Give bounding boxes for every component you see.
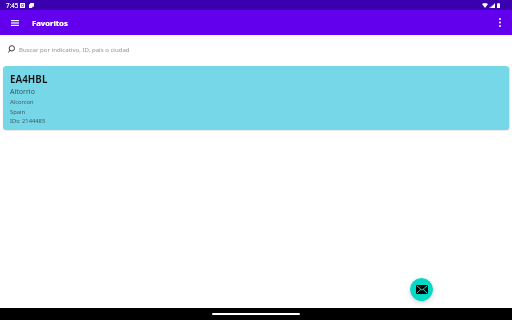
staticText: IDs: 2144485: [10, 117, 46, 125]
staticText: Alcorcon: [10, 98, 34, 106]
button[interactable]: EA4HBL: [3, 66, 509, 130]
staticText: 7:45: [6, 1, 19, 9]
staticText: EA4HBL: [10, 73, 48, 86]
button[interactable]: Open navigation menu: [0, 10, 25, 35]
staticText: Aitorrio: [10, 87, 35, 97]
button[interactable]: More options: [487, 10, 512, 35]
staticText: Spain: [10, 108, 26, 116]
staticText: Buscar por indicativo, ID, país o ciudad: [19, 45, 130, 53]
button[interactable]: Buscar por indicativo, ID, país o ciudad: [0, 35, 512, 60]
staticText: Favoritos: [32, 18, 68, 28]
button[interactable]: Send message: [410, 278, 433, 301]
